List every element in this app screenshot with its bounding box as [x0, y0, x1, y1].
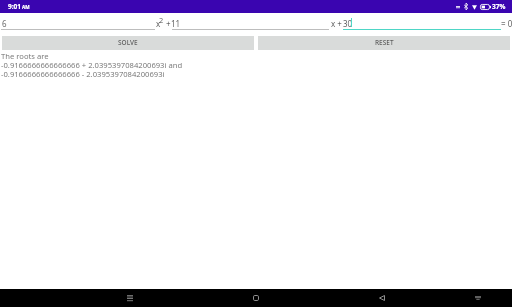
staticText: x +	[331, 18, 342, 29]
staticText: 11	[171, 18, 181, 29]
button[interactable]	[172, 15, 329, 30]
staticText: RESET	[375, 38, 394, 47]
staticText: +	[166, 18, 171, 29]
staticText: 2	[159, 15, 164, 25]
button[interactable]: Recent apps	[107, 289, 152, 307]
button[interactable]	[343, 15, 501, 30]
staticText: 6	[2, 18, 7, 29]
button[interactable]: RESET	[258, 36, 510, 50]
staticText: AM	[22, 4, 30, 10]
staticText: 9:01	[8, 2, 21, 11]
staticText: = 0	[501, 18, 512, 29]
staticText: 30	[343, 18, 353, 29]
staticText: The roots are -0.9166666666666666 + 2.03…	[1, 51, 183, 80]
staticText: SOLVE	[118, 38, 138, 47]
staticText: x	[156, 18, 161, 29]
staticText: 37%	[492, 2, 506, 11]
button[interactable]	[1, 15, 155, 30]
button[interactable]: SOLVE	[2, 36, 254, 50]
button[interactable]: Home	[233, 289, 279, 307]
button[interactable]: Hide keyboard	[458, 289, 498, 307]
button[interactable]: Back	[359, 289, 405, 307]
